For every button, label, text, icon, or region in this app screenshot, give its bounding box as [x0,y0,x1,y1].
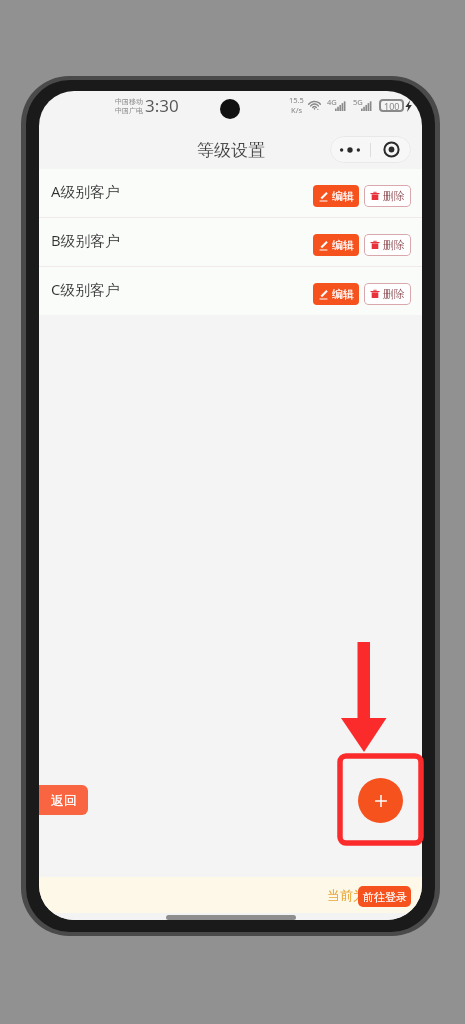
button[interactable]: C级别客户 [39,267,422,315]
staticText: 等级设置 [197,140,265,161]
staticText: 3:30 [145,94,179,117]
button[interactable]: 返回 [39,785,88,815]
staticText: 删除 [383,189,405,203]
button[interactable]: Add [358,778,403,823]
staticText: 中国移动 [115,97,143,106]
button[interactable]: 删除 [364,185,411,207]
staticText: 5G [353,97,363,107]
button[interactable]: B级别客户 [39,218,422,266]
button[interactable]: More options [330,136,411,163]
staticText: 15.5 [289,95,304,105]
button[interactable]: 前往登录 [358,886,411,907]
staticText: 删除 [383,238,405,252]
staticText: 当前为游客 [327,887,372,903]
staticText: B级别客户 [51,230,120,250]
button[interactable]: 删除 [364,234,411,256]
button[interactable]: 删除 [364,283,411,305]
staticText: A级别客户 [51,181,120,201]
staticText: K/s [291,105,303,115]
staticText: 中国广电 [115,106,143,115]
button[interactable]: A级别客户 [39,169,422,217]
button[interactable]: 编辑 [313,283,359,305]
staticText: 前往登录 [363,890,407,904]
staticText: 返回 [51,792,77,808]
button[interactable]: 编辑 [313,234,359,256]
staticText: 100 [384,100,400,112]
staticText: 编辑 [332,287,354,301]
staticText: 编辑 [332,189,354,203]
staticText: 编辑 [332,238,354,252]
staticText: C级别客户 [51,279,120,299]
staticText: 4G [327,97,337,107]
button[interactable]: 编辑 [313,185,359,207]
staticText: 删除 [383,287,405,301]
